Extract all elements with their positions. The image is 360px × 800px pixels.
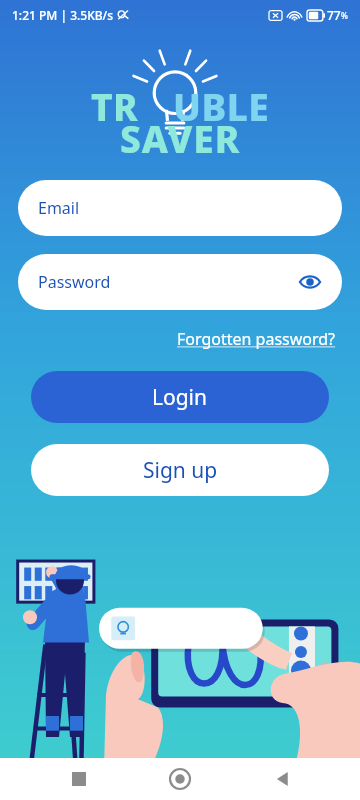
- staticText: Forgotten password?: [177, 328, 336, 350]
- staticText: 1:21 PM | 3.5KB/s: [12, 7, 114, 23]
- button[interactable]: Recents: [56, 758, 102, 800]
- staticText: 77: [327, 7, 341, 23]
- button[interactable]: Password: [18, 254, 342, 310]
- button[interactable]: Back: [259, 758, 305, 800]
- button[interactable]: Login: [31, 371, 329, 423]
- button[interactable]: Home: [157, 758, 203, 800]
- button[interactable]: Forgotten password?: [175, 324, 338, 354]
- staticText: UBLE: [173, 81, 270, 131]
- staticText: TR: [91, 81, 139, 131]
- button[interactable]: Show password: [294, 266, 326, 298]
- staticText: Email: [38, 197, 80, 219]
- staticText: Login: [152, 383, 208, 412]
- button[interactable]: Email: [18, 180, 342, 236]
- staticText: Sign up: [143, 456, 218, 485]
- button[interactable]: Sign up: [31, 444, 329, 496]
- staticText: Password: [38, 271, 111, 293]
- staticText: SAVER: [120, 113, 241, 163]
- staticText: %: [341, 10, 348, 21]
